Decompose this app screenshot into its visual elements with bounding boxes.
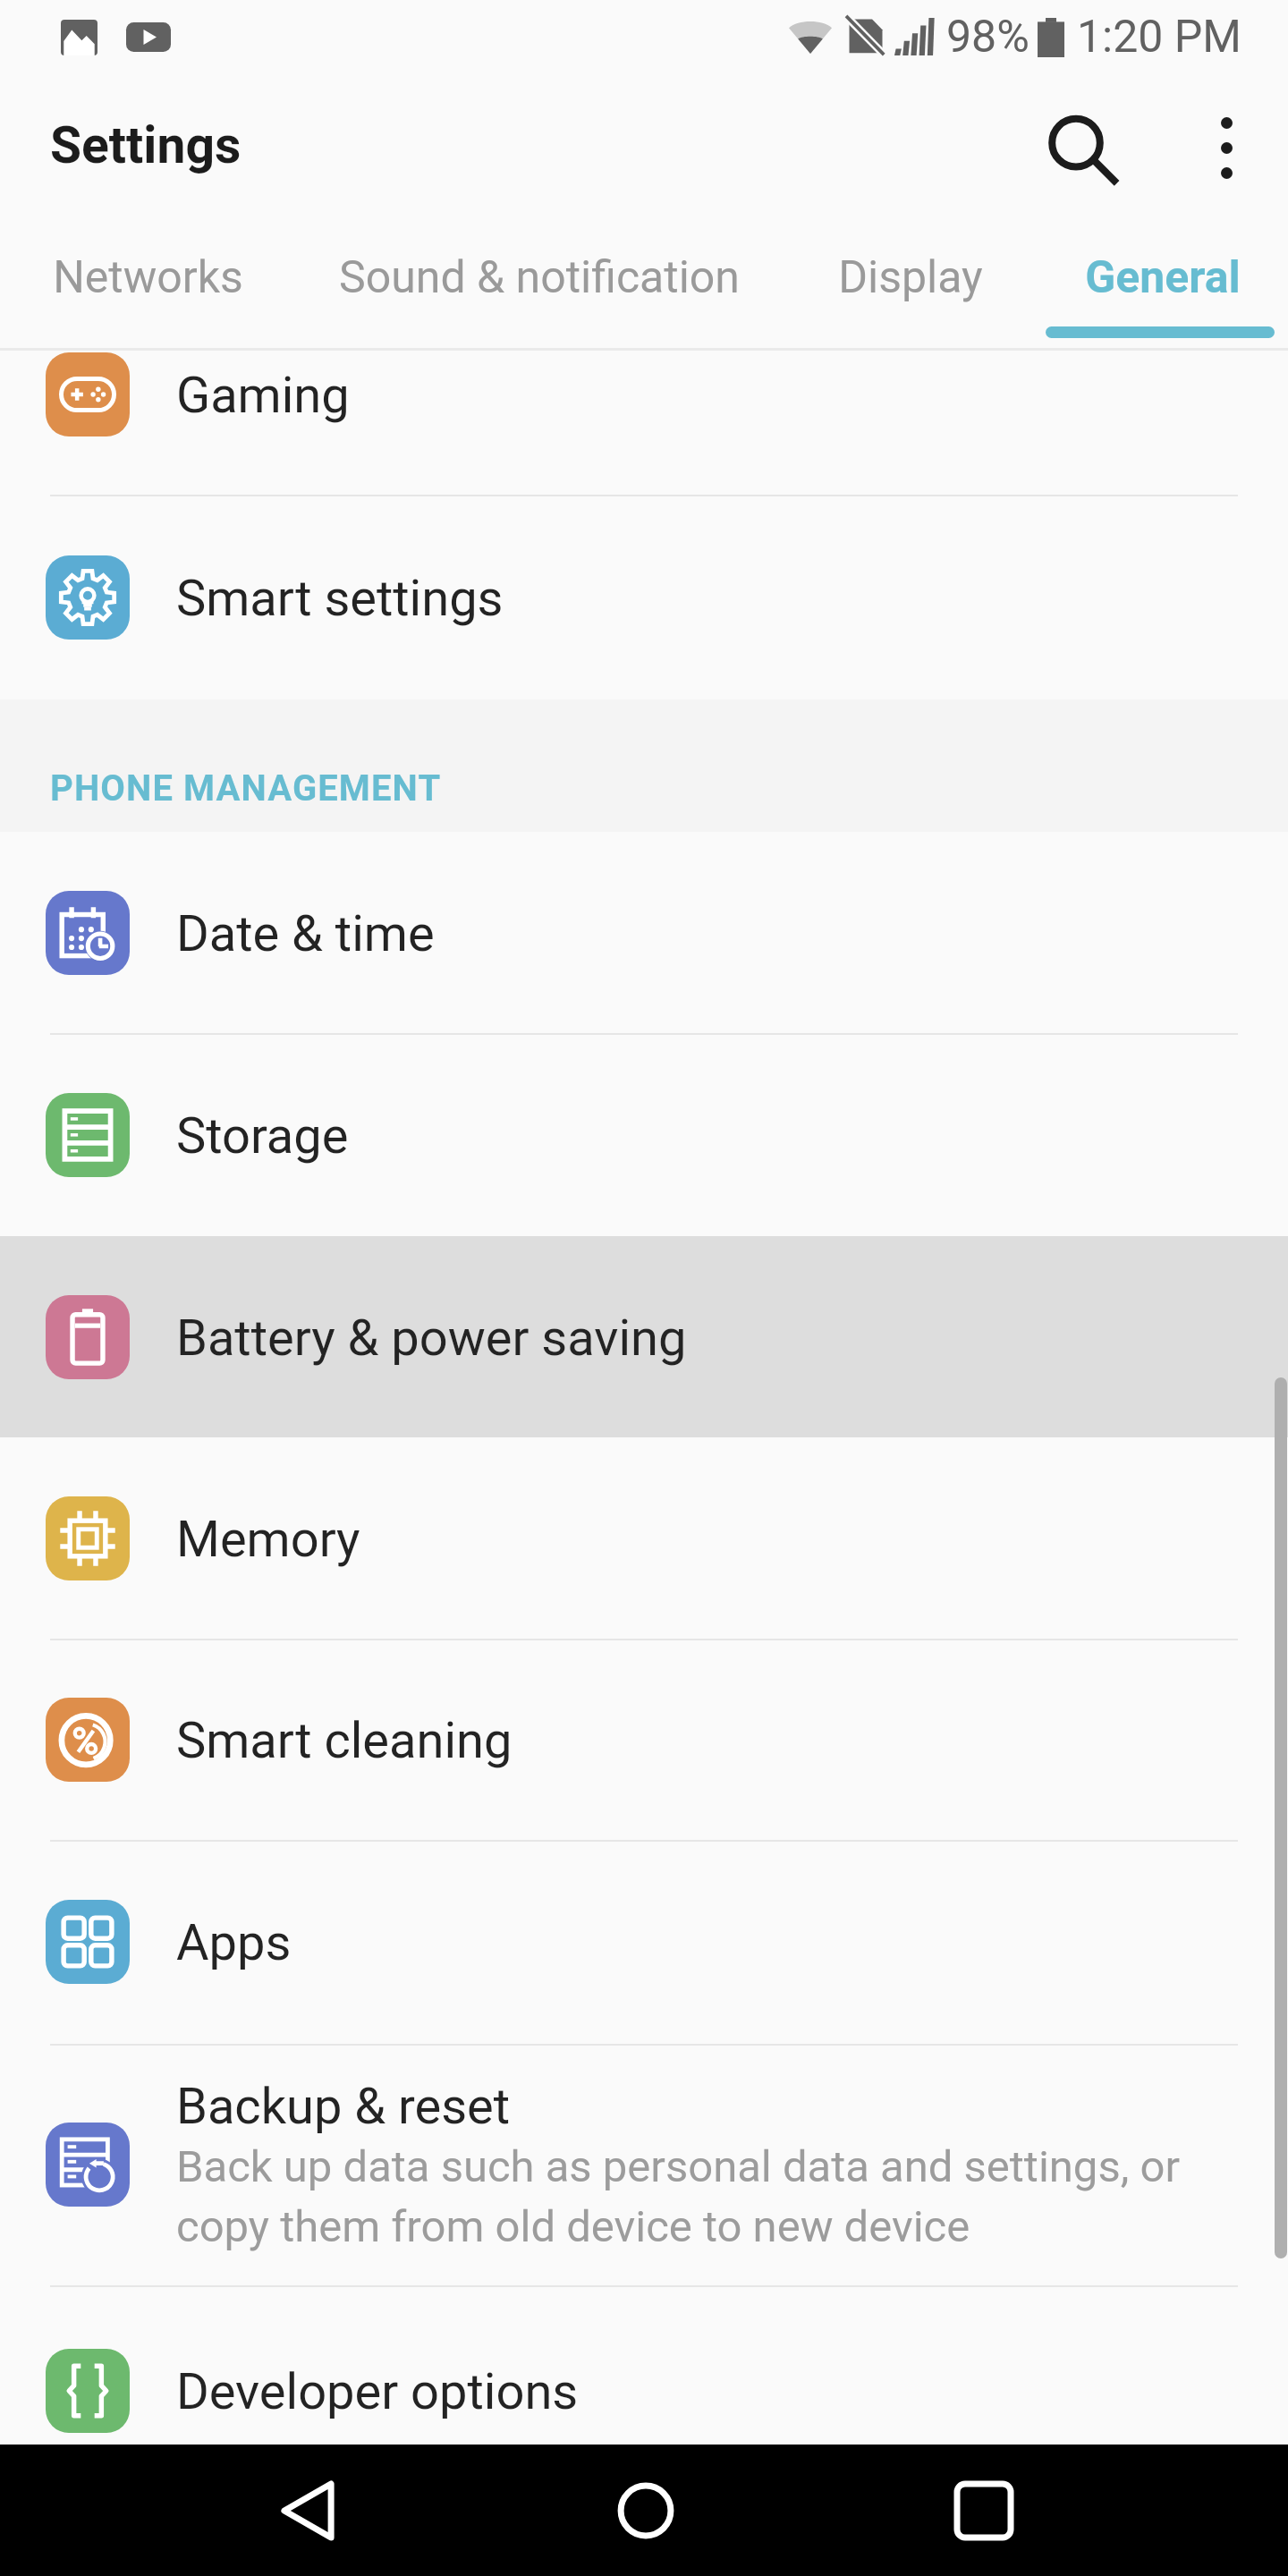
staticText: Networks [53, 251, 243, 304]
staticText: Developer options [176, 2362, 579, 2421]
staticText: Sound & notification [339, 251, 740, 304]
button[interactable]: Gaming [0, 293, 1288, 495]
staticText: Backup & reset [176, 2077, 511, 2136]
button[interactable]: Display [783, 224, 1038, 351]
staticText: Storage [176, 1106, 349, 1165]
staticText: Memory [176, 1510, 360, 1569]
staticText: Smart settings [176, 569, 504, 628]
button[interactable]: Home [567, 2445, 724, 2576]
button[interactable]: Back [229, 2445, 386, 2576]
button[interactable]: Smart settings [0, 495, 1288, 699]
button[interactable]: General [1038, 224, 1288, 351]
staticText: General [1085, 251, 1241, 304]
staticText: Date & time [176, 904, 435, 963]
button[interactable]: Storage [0, 1033, 1288, 1236]
button[interactable]: Search [1018, 79, 1152, 224]
button[interactable]: Networks [0, 224, 295, 351]
staticText: PHONE MANAGEMENT [50, 767, 442, 809]
button[interactable]: Recents [905, 2445, 1062, 2576]
staticText: Battery & power saving [176, 1309, 687, 1368]
button[interactable]: More options [1165, 79, 1288, 224]
button[interactable]: Smart cleaning [0, 1639, 1288, 1840]
button[interactable]: Apps [0, 1840, 1288, 2044]
staticText: Back up data such as personal data and s… [176, 2141, 1227, 2252]
button[interactable]: Sound & notification [295, 224, 783, 351]
staticText: 1:20 PM [1077, 11, 1242, 64]
staticText: Settings [50, 115, 241, 175]
staticText: Apps [176, 1913, 292, 1972]
staticText: Gaming [176, 366, 350, 425]
button[interactable]: Developer options [0, 2285, 1288, 2495]
button[interactable]: Memory [0, 1437, 1288, 1639]
button[interactable]: Backup & reset [0, 2044, 1288, 2285]
button[interactable]: Battery & power saving [0, 1236, 1288, 1437]
staticText: 98% [946, 11, 1030, 64]
staticText: Smart cleaning [176, 1711, 513, 1770]
button[interactable]: Date & time [0, 832, 1288, 1033]
staticText: Display [838, 251, 983, 304]
